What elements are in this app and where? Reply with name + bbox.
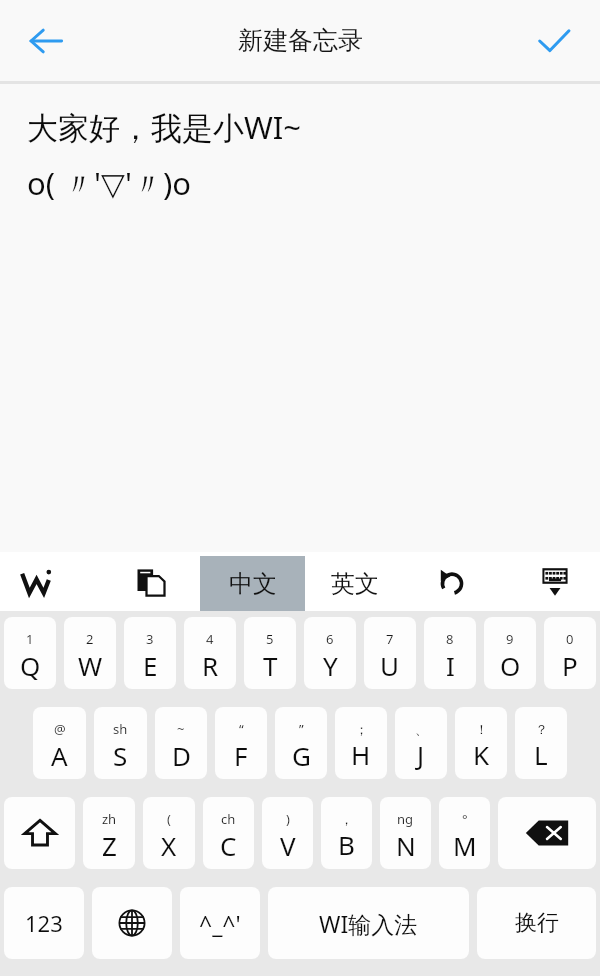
staticText: (	[167, 810, 171, 828]
button[interactable]: sh	[94, 707, 147, 779]
staticText: X	[161, 828, 177, 863]
button[interactable]: Shift	[4, 797, 75, 869]
button[interactable]: °	[439, 797, 490, 869]
staticText: T	[263, 648, 278, 683]
staticText: A	[51, 738, 68, 773]
staticText: 6	[326, 630, 334, 648]
staticText: ”	[299, 720, 304, 738]
staticText: °	[462, 810, 468, 828]
staticText: J	[417, 737, 425, 772]
staticText: P	[562, 648, 578, 683]
button[interactable]: Save	[524, 11, 584, 71]
button[interactable]: ？	[515, 707, 567, 779]
staticText: B	[338, 827, 355, 862]
button[interactable]: )	[262, 797, 313, 869]
staticText: K	[473, 737, 490, 772]
staticText: W	[78, 648, 103, 683]
staticText: 新建备忘录	[238, 25, 363, 56]
button[interactable]: ”	[275, 707, 327, 779]
button[interactable]: 7	[364, 617, 416, 689]
staticText: 5	[266, 630, 274, 648]
button[interactable]: Hide keyboard	[520, 552, 590, 611]
button[interactable]: 5	[244, 617, 296, 689]
staticText: N	[396, 828, 416, 863]
staticText: 英文	[331, 569, 379, 599]
staticText: Y	[323, 648, 338, 683]
button[interactable]: “	[215, 707, 267, 779]
staticText: 、	[415, 721, 428, 737]
button[interactable]: 9	[484, 617, 536, 689]
staticText: 9	[506, 630, 514, 648]
staticText: U	[380, 648, 400, 683]
button[interactable]: Undo	[420, 552, 484, 611]
staticText: ，	[340, 811, 353, 827]
button[interactable]: 、	[395, 707, 447, 779]
staticText: 7	[386, 630, 394, 648]
button[interactable]: ng	[380, 797, 431, 869]
staticText: 中文	[229, 569, 277, 599]
button[interactable]: (	[143, 797, 195, 869]
button[interactable]: WI input method	[20, 552, 92, 611]
staticText: F	[234, 738, 248, 773]
button[interactable]: Back	[16, 11, 76, 71]
staticText: Z	[102, 828, 117, 863]
button[interactable]: 中文	[200, 556, 305, 611]
button[interactable]: 1	[4, 617, 56, 689]
staticText: 0	[566, 630, 574, 648]
staticText: sh	[113, 720, 128, 738]
staticText: 2	[86, 630, 94, 648]
button[interactable]: 123	[4, 887, 84, 959]
staticText: ch	[221, 810, 236, 828]
button[interactable]: Backspace	[498, 797, 596, 869]
button[interactable]: ^_^'	[180, 887, 260, 959]
staticText: 1	[26, 630, 34, 648]
staticText: “	[239, 720, 244, 738]
button[interactable]: ，	[321, 797, 372, 869]
button[interactable]: 0	[544, 617, 596, 689]
staticText: R	[202, 648, 219, 683]
staticText: D	[172, 738, 191, 773]
staticText: V	[280, 828, 296, 863]
button[interactable]: 6	[304, 617, 356, 689]
staticText: 4	[206, 630, 214, 648]
staticText: ~	[177, 720, 185, 738]
button[interactable]: 英文	[305, 556, 405, 611]
button[interactable]: @	[33, 707, 86, 779]
staticText: o( 〃'▽'〃)o	[27, 162, 191, 204]
button[interactable]: ~	[155, 707, 207, 779]
staticText: G	[292, 738, 311, 773]
staticText: E	[143, 648, 158, 683]
staticText: 123	[25, 908, 63, 938]
staticText: ；	[355, 721, 368, 737]
staticText: ？	[535, 721, 548, 737]
staticText: WI输入法	[319, 908, 418, 939]
staticText: I	[446, 648, 455, 683]
button[interactable]: 换行	[477, 887, 596, 959]
staticText: O	[500, 648, 521, 683]
staticText: Q	[20, 648, 41, 683]
button[interactable]: ！	[455, 707, 507, 779]
staticText: ^_^'	[199, 908, 241, 939]
button[interactable]: 8	[424, 617, 476, 689]
button[interactable]: ch	[203, 797, 254, 869]
staticText: H	[351, 737, 371, 772]
button[interactable]: ；	[335, 707, 387, 779]
staticText: C	[220, 828, 237, 863]
staticText: 大家好，我是小WI~	[27, 106, 302, 148]
button[interactable]: WI输入法	[268, 887, 469, 959]
staticText: 8	[446, 630, 454, 648]
staticText: @	[54, 720, 66, 738]
staticText: ng	[397, 810, 414, 828]
staticText: L	[534, 737, 548, 772]
staticText: )	[286, 810, 290, 828]
button[interactable]: zh	[83, 797, 135, 869]
button[interactable]: Switch language	[92, 887, 172, 959]
staticText: ！	[475, 721, 488, 737]
button[interactable]: 3	[124, 617, 176, 689]
staticText: S	[113, 738, 128, 773]
staticText: zh	[102, 810, 117, 828]
button[interactable]: 2	[64, 617, 116, 689]
button[interactable]: Paste	[125, 552, 177, 611]
staticText: M	[453, 828, 477, 863]
button[interactable]: 4	[184, 617, 236, 689]
